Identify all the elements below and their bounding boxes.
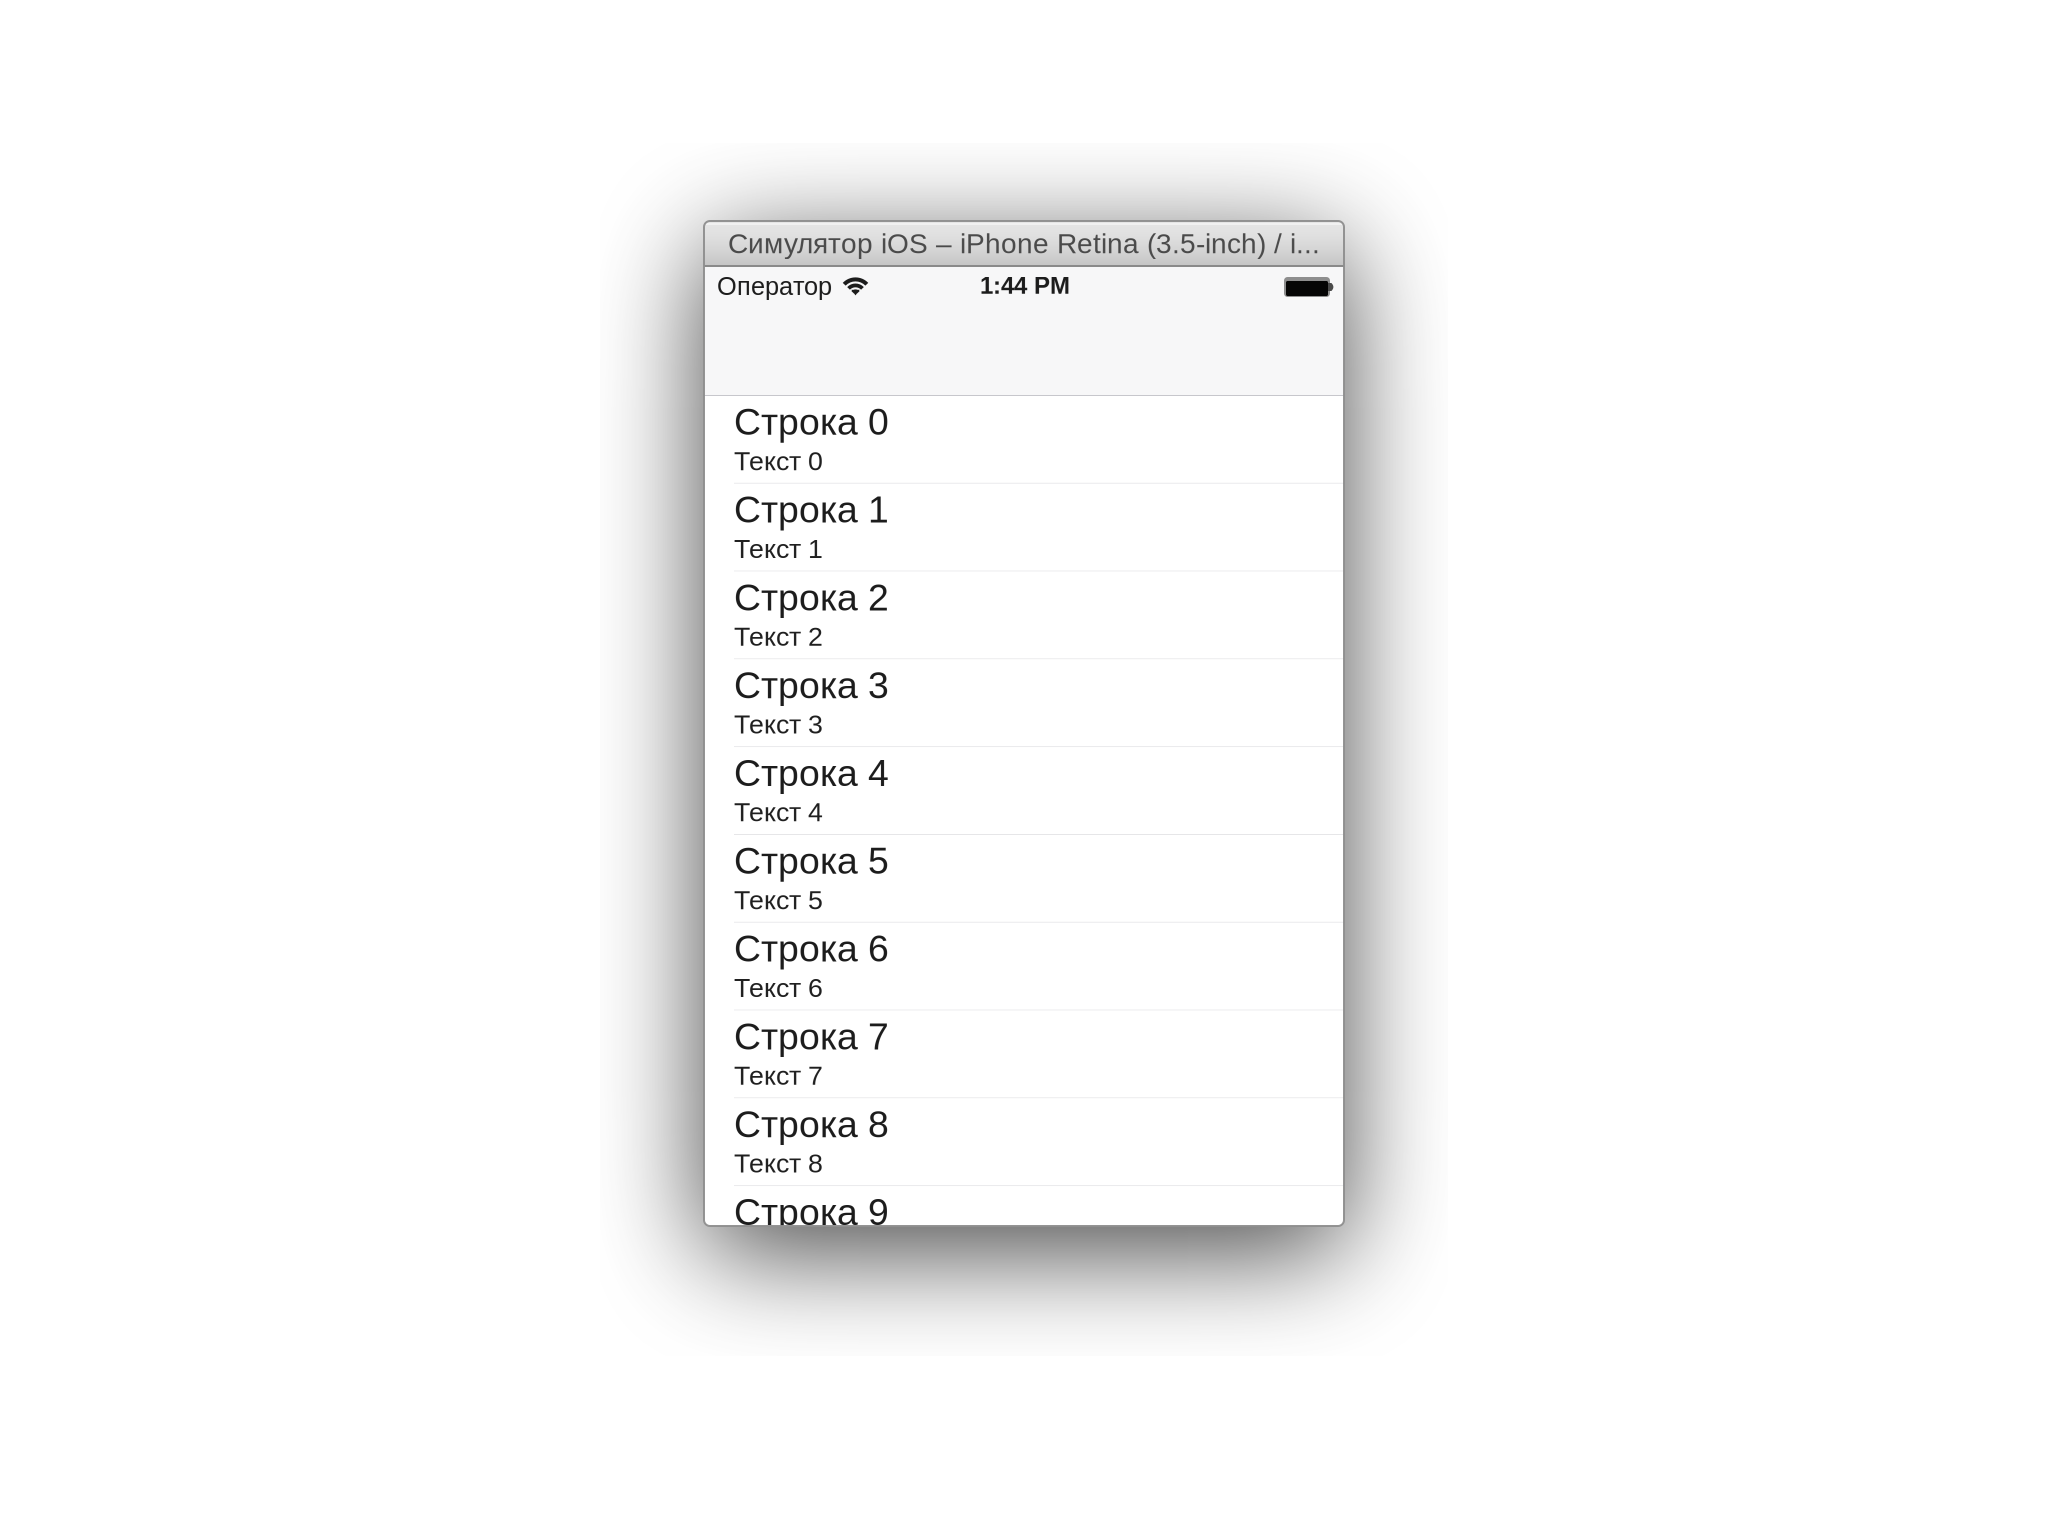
staticText: Строка 2	[734, 577, 889, 618]
staticText: Текст 5	[734, 885, 823, 915]
staticText: Текст 8	[734, 1148, 823, 1178]
staticText: Оператор	[717, 272, 832, 300]
staticText: Строка 7	[734, 1016, 889, 1057]
staticText: Текст 1	[734, 534, 823, 564]
button[interactable]: Строка 5	[704, 835, 1344, 923]
button[interactable]: Строка 1	[704, 484, 1344, 572]
button[interactable]: Строка 7	[704, 1011, 1344, 1098]
staticText: Текст 7	[734, 1061, 823, 1090]
staticText: Текст 3	[734, 709, 823, 739]
staticText: Текст 0	[734, 446, 823, 476]
button[interactable]: Строка 9	[704, 1186, 1344, 1274]
staticText: Строка 0	[734, 401, 889, 443]
staticText: Строка 9	[734, 1191, 889, 1233]
button[interactable]: Строка 0	[704, 396, 1344, 484]
staticText: Текст 4	[734, 797, 823, 827]
staticText: Строка 5	[734, 840, 889, 882]
staticText: Строка 8	[734, 1103, 889, 1145]
staticText: Симулятор iOS – iPhone Retina (3.5-inch)…	[728, 228, 1320, 259]
button[interactable]: Строка 6	[704, 923, 1344, 1011]
staticText: Текст 9	[734, 1236, 823, 1266]
button[interactable]: Строка 2	[704, 572, 1344, 659]
staticText: Строка 1	[734, 489, 889, 530]
staticText: Строка 6	[734, 928, 889, 969]
button[interactable]: Строка 3	[704, 659, 1344, 747]
button[interactable]: Строка 4	[704, 747, 1344, 835]
staticText: Строка 4	[734, 752, 889, 794]
staticText: Текст 6	[734, 973, 823, 1003]
staticText: 1:44 PM	[980, 272, 1070, 299]
staticText: Строка 3	[734, 664, 889, 706]
staticText: Текст 2	[734, 622, 823, 651]
button[interactable]: Строка 8	[704, 1098, 1344, 1186]
